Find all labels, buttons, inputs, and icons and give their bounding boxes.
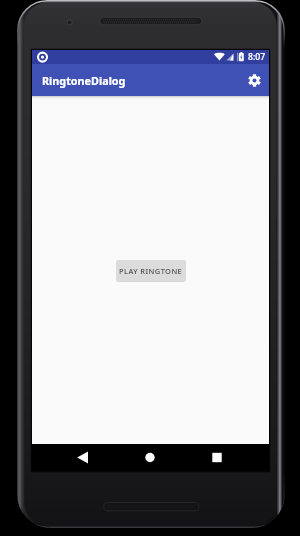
button[interactable]: PLAY RINGTONE xyxy=(116,260,186,281)
button[interactable]: Back xyxy=(62,444,104,471)
button[interactable]: Recents xyxy=(196,444,238,471)
staticText: PLAY RINGTONE xyxy=(119,266,183,276)
button[interactable]: Settings xyxy=(243,69,265,91)
staticText: RingtoneDialog xyxy=(42,73,126,88)
button[interactable]: Home xyxy=(129,444,171,471)
staticText: 8:07 xyxy=(248,51,266,63)
